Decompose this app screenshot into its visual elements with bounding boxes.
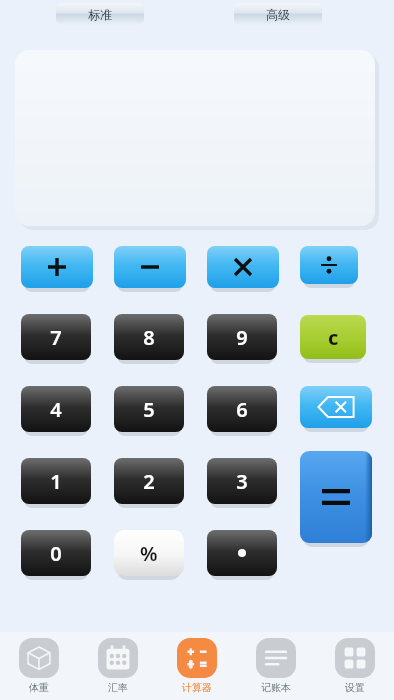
staticText: % <box>140 540 158 567</box>
button[interactable]: 体重 <box>0 632 78 700</box>
staticText: 记账本 <box>261 681 291 694</box>
button[interactable]: Clear <box>300 315 366 364</box>
button[interactable]: 8 <box>114 314 184 365</box>
button[interactable]: 标准 <box>56 3 144 25</box>
button[interactable]: 4 <box>21 386 91 437</box>
button[interactable]: 3 <box>207 458 277 509</box>
staticText: 3 <box>236 468 248 495</box>
button[interactable]: 汇率 <box>78 632 157 700</box>
button[interactable]: 设置 <box>315 632 394 700</box>
staticText: 计算器 <box>182 681 212 694</box>
button[interactable]: 计算器 <box>157 632 236 700</box>
button[interactable]: 2 <box>114 458 184 509</box>
button[interactable]: 5 <box>114 386 184 437</box>
staticText: 设置 <box>345 681 365 694</box>
button[interactable]: Multiply <box>207 246 279 293</box>
staticText: 高级 <box>266 7 290 22</box>
staticText: 6 <box>236 396 248 423</box>
button[interactable]: Decimal point <box>207 530 277 581</box>
button[interactable]: 高级 <box>234 3 322 25</box>
staticText: 体重 <box>29 681 49 694</box>
button[interactable]: 9 <box>207 314 277 365</box>
button[interactable]: Backspace <box>300 386 372 433</box>
button[interactable]: Percent <box>114 530 184 581</box>
button[interactable]: Equals <box>300 451 372 548</box>
button[interactable]: 7 <box>21 314 91 365</box>
button[interactable]: Plus <box>21 246 93 293</box>
button[interactable]: 0 <box>21 530 91 581</box>
staticText: 标准 <box>88 7 112 22</box>
button[interactable]: Minus <box>114 246 186 293</box>
staticText: c <box>328 324 339 351</box>
button[interactable]: 6 <box>207 386 277 437</box>
staticText: 7 <box>50 324 62 351</box>
staticText: 8 <box>143 324 155 351</box>
staticText: 9 <box>236 324 248 351</box>
button[interactable]: 记账本 <box>236 632 315 700</box>
staticText: 5 <box>143 396 155 423</box>
staticText: 4 <box>50 396 62 423</box>
staticText: 汇率 <box>108 681 128 694</box>
button[interactable]: 1 <box>21 458 91 509</box>
button[interactable]: Divide <box>300 246 358 289</box>
staticText: 1 <box>50 468 62 495</box>
staticText: 2 <box>143 468 155 495</box>
staticText: 0 <box>50 540 62 567</box>
